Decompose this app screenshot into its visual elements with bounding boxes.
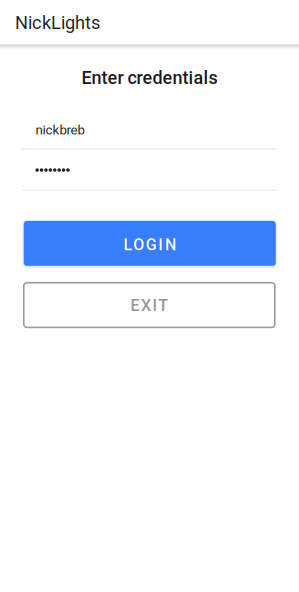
button[interactable]: nickbreb [21,110,277,150]
staticText: EXIT [130,296,168,315]
staticText: LOGIN [124,235,176,254]
staticText: Enter credentials [81,67,217,88]
staticText: NickLights [15,12,100,33]
button[interactable]: Password [21,152,277,191]
button[interactable]: EXIT [24,283,275,327]
staticText: nickbreb [36,122,85,138]
button[interactable]: LOGIN [24,221,276,266]
